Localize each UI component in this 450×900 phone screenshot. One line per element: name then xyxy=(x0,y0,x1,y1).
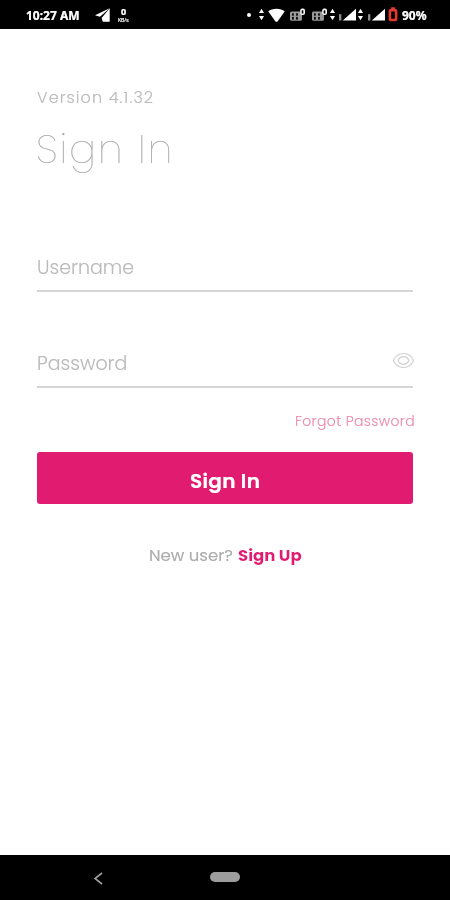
button[interactable]: Username xyxy=(37,252,413,292)
button[interactable]: Show password xyxy=(389,346,417,374)
button[interactable]: Forgot Password xyxy=(293,405,418,437)
staticText: Forgot Password xyxy=(295,411,416,431)
staticText: 90% xyxy=(402,7,427,23)
staticText: Sign In xyxy=(36,121,175,177)
staticText: Password xyxy=(37,350,128,377)
button[interactable]: Home xyxy=(202,864,248,890)
button[interactable]: Sign In xyxy=(37,452,413,504)
button[interactable]: Sign Up xyxy=(238,538,304,573)
staticText: Sign Up xyxy=(238,544,302,567)
staticText: Version 4.1.32 xyxy=(37,86,155,108)
staticText: KB/s xyxy=(118,17,129,24)
button[interactable]: Back xyxy=(83,863,113,893)
button[interactable]: Password xyxy=(37,348,413,388)
staticText: New user? xyxy=(149,544,238,567)
staticText: 10:27 AM xyxy=(26,7,80,23)
staticText: 0 xyxy=(121,5,127,17)
staticText: Username xyxy=(37,254,135,281)
staticText: Sign In xyxy=(190,467,261,495)
